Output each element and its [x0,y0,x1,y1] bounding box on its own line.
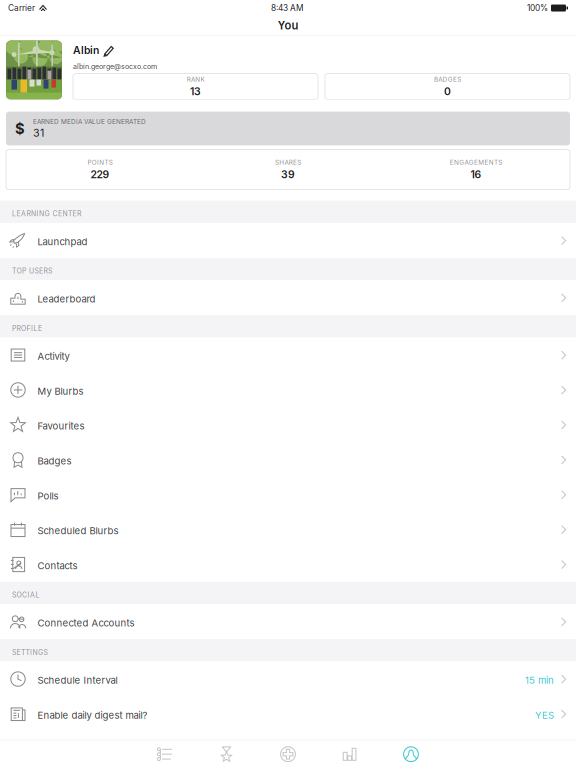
staticText: LEARNING CENTER [12,210,81,218]
staticText: SETTINGS [12,648,47,657]
staticText: Activity [37,350,69,362]
button[interactable]: Edit name [99,44,114,56]
staticText: Connected Accounts [37,617,134,629]
staticText: My Blurbs [37,385,83,397]
button[interactable]: Leaderboard [196,740,257,768]
button[interactable]: Connected Accounts [0,604,576,639]
staticText: Badges [37,455,71,467]
staticText: Carrier [8,3,35,13]
staticText: SHARES [275,158,301,166]
staticText: Leaderboard [37,293,95,305]
staticText: Albin [73,44,99,57]
button[interactable]: Enable daily digest mail? [0,696,576,731]
staticText: Enable daily digest mail? [37,709,147,721]
staticText: $ [15,120,25,137]
button[interactable]: Favourites [0,407,576,442]
staticText: 39 [281,168,295,181]
staticText: TOP USERS [12,267,52,275]
button[interactable]: Polls [0,477,576,512]
button[interactable]: You [380,740,442,768]
staticText: Favourites [37,420,84,432]
button[interactable]: My Blurbs [0,372,576,407]
staticText: SOCIAL [12,591,39,599]
staticText: Polls [37,490,58,502]
button[interactable]: Scheduled Blurbs [0,512,576,547]
staticText: You [277,19,298,32]
staticText: 8:43 AM [271,3,303,13]
button[interactable]: Launchpad [0,223,576,258]
staticText: RANK [187,75,204,83]
staticText: PROFILE [12,324,42,333]
button[interactable]: Create [257,740,319,768]
staticText: POINTS [87,158,113,166]
staticText: Contacts [37,560,77,571]
staticText: 100% [527,3,548,13]
staticText: 0 [444,85,451,98]
staticText: 31 [33,126,44,139]
button[interactable]: Feed [134,740,196,768]
button[interactable]: Activity [0,338,576,372]
staticText: Scheduled Blurbs [37,525,118,537]
staticText: YES [535,709,554,721]
staticText: Launchpad [37,236,87,247]
button[interactable]: Leaderboard [0,280,576,315]
staticText: ENGAGEMENTS [450,158,502,166]
staticText: 229 [90,168,109,181]
staticText: 13 [190,85,201,98]
button[interactable]: Analytics [319,740,380,768]
button[interactable]: Badges [0,442,576,477]
staticText: BADGES [434,75,461,83]
staticText: Schedule Interval [37,674,117,686]
staticText: albin.george@socxo.com [73,62,157,71]
staticText: 15 min [525,674,554,686]
staticText: 16 [470,168,481,181]
button[interactable]: Contacts [0,547,576,582]
staticText: EARNED MEDIA VALUE GENERATED [33,118,146,125]
button[interactable]: Schedule Interval [0,662,576,696]
